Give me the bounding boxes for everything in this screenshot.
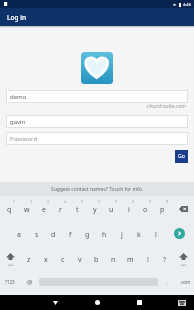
staticText: w (24, 205, 30, 215)
staticText: 2 (30, 199, 33, 204)
button[interactable]: demo (6, 90, 188, 103)
staticText: .churchsuite.com (0, 103, 186, 110)
button[interactable]: l (147, 221, 164, 246)
staticText: s (35, 230, 39, 240)
staticText: m (127, 255, 134, 265)
staticText: 8 (132, 199, 135, 204)
staticText: f (69, 230, 72, 240)
button[interactable]: Suggest contact names? Touch for info. (51, 186, 144, 193)
staticText: g (85, 230, 90, 240)
button[interactable]: Switch keyboard (172, 295, 192, 310)
staticText: 7 (115, 199, 118, 204)
staticText: n (111, 255, 116, 265)
staticText: ! (147, 255, 149, 265)
staticText: @ (27, 278, 33, 286)
staticText: z (27, 255, 31, 265)
button[interactable]: f (62, 221, 79, 246)
button[interactable]: j (113, 221, 130, 246)
staticText: .com (180, 279, 191, 285)
button[interactable]: 6 (86, 196, 103, 221)
staticText: 4:46 (183, 2, 191, 7)
staticText: u (109, 205, 114, 215)
staticText: k (137, 230, 141, 240)
button[interactable]: ! (139, 246, 156, 271)
button[interactable]: Home (83, 295, 111, 310)
button[interactable]: g (79, 221, 96, 246)
button[interactable]: Shift (173, 246, 194, 271)
button[interactable]: ? (156, 246, 173, 271)
staticText: d (51, 230, 56, 240)
staticText: l (155, 230, 157, 240)
button[interactable]: 8 (120, 196, 137, 221)
staticText: i (128, 205, 130, 215)
button[interactable]: m (122, 246, 139, 271)
staticText: 4 (64, 199, 67, 204)
staticText: Password (10, 135, 38, 143)
button[interactable]: z (20, 246, 37, 271)
button[interactable]: Recents (124, 295, 152, 310)
staticText: gavin (10, 118, 26, 126)
button[interactable]: Go (175, 150, 188, 163)
staticText: Go (178, 153, 185, 160)
button[interactable]: 1 (0, 196, 18, 221)
staticText: b (94, 255, 99, 265)
button[interactable]: k (130, 221, 147, 246)
button[interactable]: h (96, 221, 113, 246)
staticText: q (7, 205, 12, 215)
staticText: 9 (149, 199, 152, 204)
button[interactable]: . (158, 271, 176, 296)
staticText: 5 (81, 199, 84, 204)
button[interactable]: 9 (137, 196, 154, 221)
staticText: v (78, 255, 82, 265)
staticText: o (143, 205, 148, 215)
button[interactable]: Backspace (171, 196, 194, 221)
staticText: j (121, 230, 123, 240)
staticText: 1 (13, 199, 16, 204)
button[interactable]: s (28, 221, 45, 246)
button[interactable]: 2 (18, 196, 35, 221)
button[interactable]: Shift (0, 246, 20, 271)
staticText: p (160, 205, 165, 215)
staticText: a (17, 230, 21, 240)
button[interactable]: b (88, 246, 105, 271)
button[interactable]: Back (41, 295, 69, 310)
staticText: t (76, 205, 79, 215)
staticText: ? (163, 255, 167, 265)
button[interactable]: 3 (35, 196, 52, 221)
staticText: e (42, 205, 46, 215)
button[interactable]: 7 (103, 196, 120, 221)
button[interactable]: x (37, 246, 54, 271)
button[interactable]: n (105, 246, 122, 271)
button[interactable]: d (45, 221, 62, 246)
button[interactable]: v (71, 246, 88, 271)
staticText: . (166, 278, 168, 286)
button[interactable]: a (10, 221, 28, 246)
staticText: r (59, 205, 62, 215)
button[interactable]: .com (176, 271, 194, 296)
staticText: 0 (166, 199, 169, 204)
staticText: Log in (7, 13, 26, 22)
button[interactable]: 0 (154, 196, 171, 221)
button[interactable]: Password (6, 132, 188, 145)
button[interactable]: gavin (6, 115, 188, 128)
staticText: demo (10, 93, 27, 101)
button[interactable]: ?123 (0, 271, 20, 296)
staticText: y (93, 205, 97, 215)
button[interactable]: Enter (164, 221, 194, 246)
button[interactable]: 4 (52, 196, 69, 221)
button[interactable]: c (54, 246, 71, 271)
staticText: 6 (98, 199, 101, 204)
staticText: 3 (47, 199, 50, 204)
button[interactable]: @ (20, 271, 39, 296)
staticText: x (44, 255, 48, 265)
button[interactable]: 5 (69, 196, 86, 221)
staticText: ?123 (5, 279, 15, 285)
staticText: c (61, 255, 65, 265)
staticText: h (102, 230, 107, 240)
